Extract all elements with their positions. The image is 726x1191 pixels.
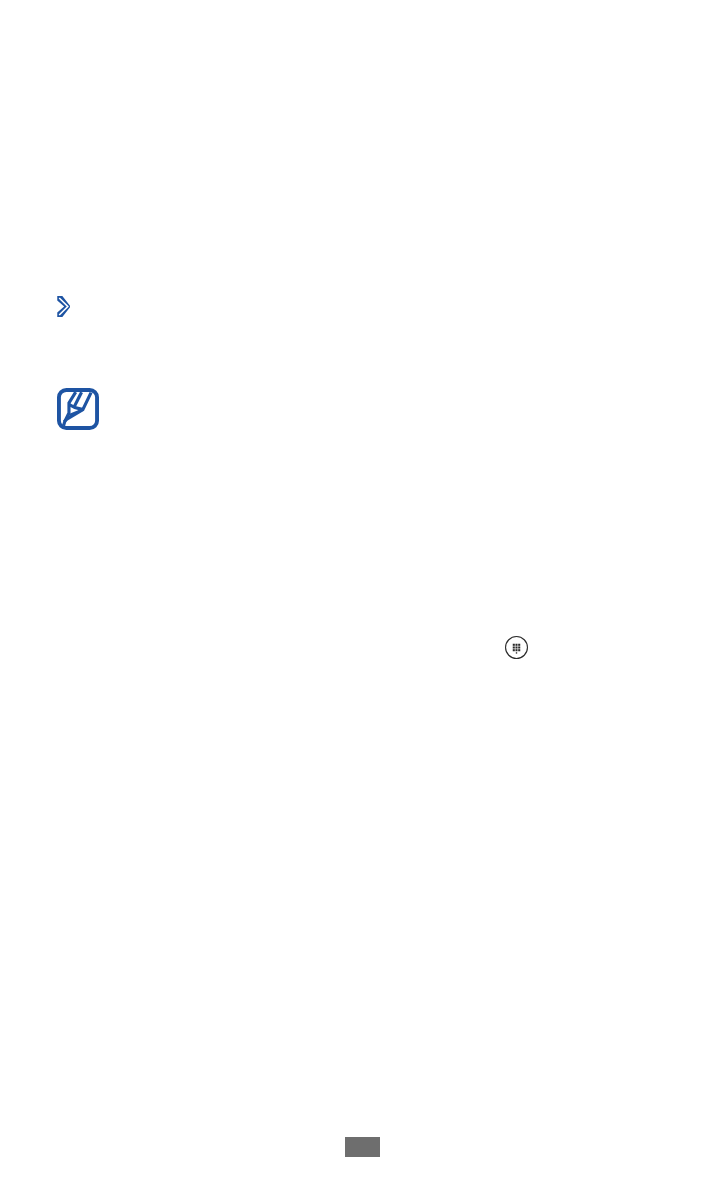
button[interactable]: Applications <box>505 636 528 659</box>
button[interactable]: Next <box>57 296 70 317</box>
button[interactable]: Memo <box>57 388 99 430</box>
